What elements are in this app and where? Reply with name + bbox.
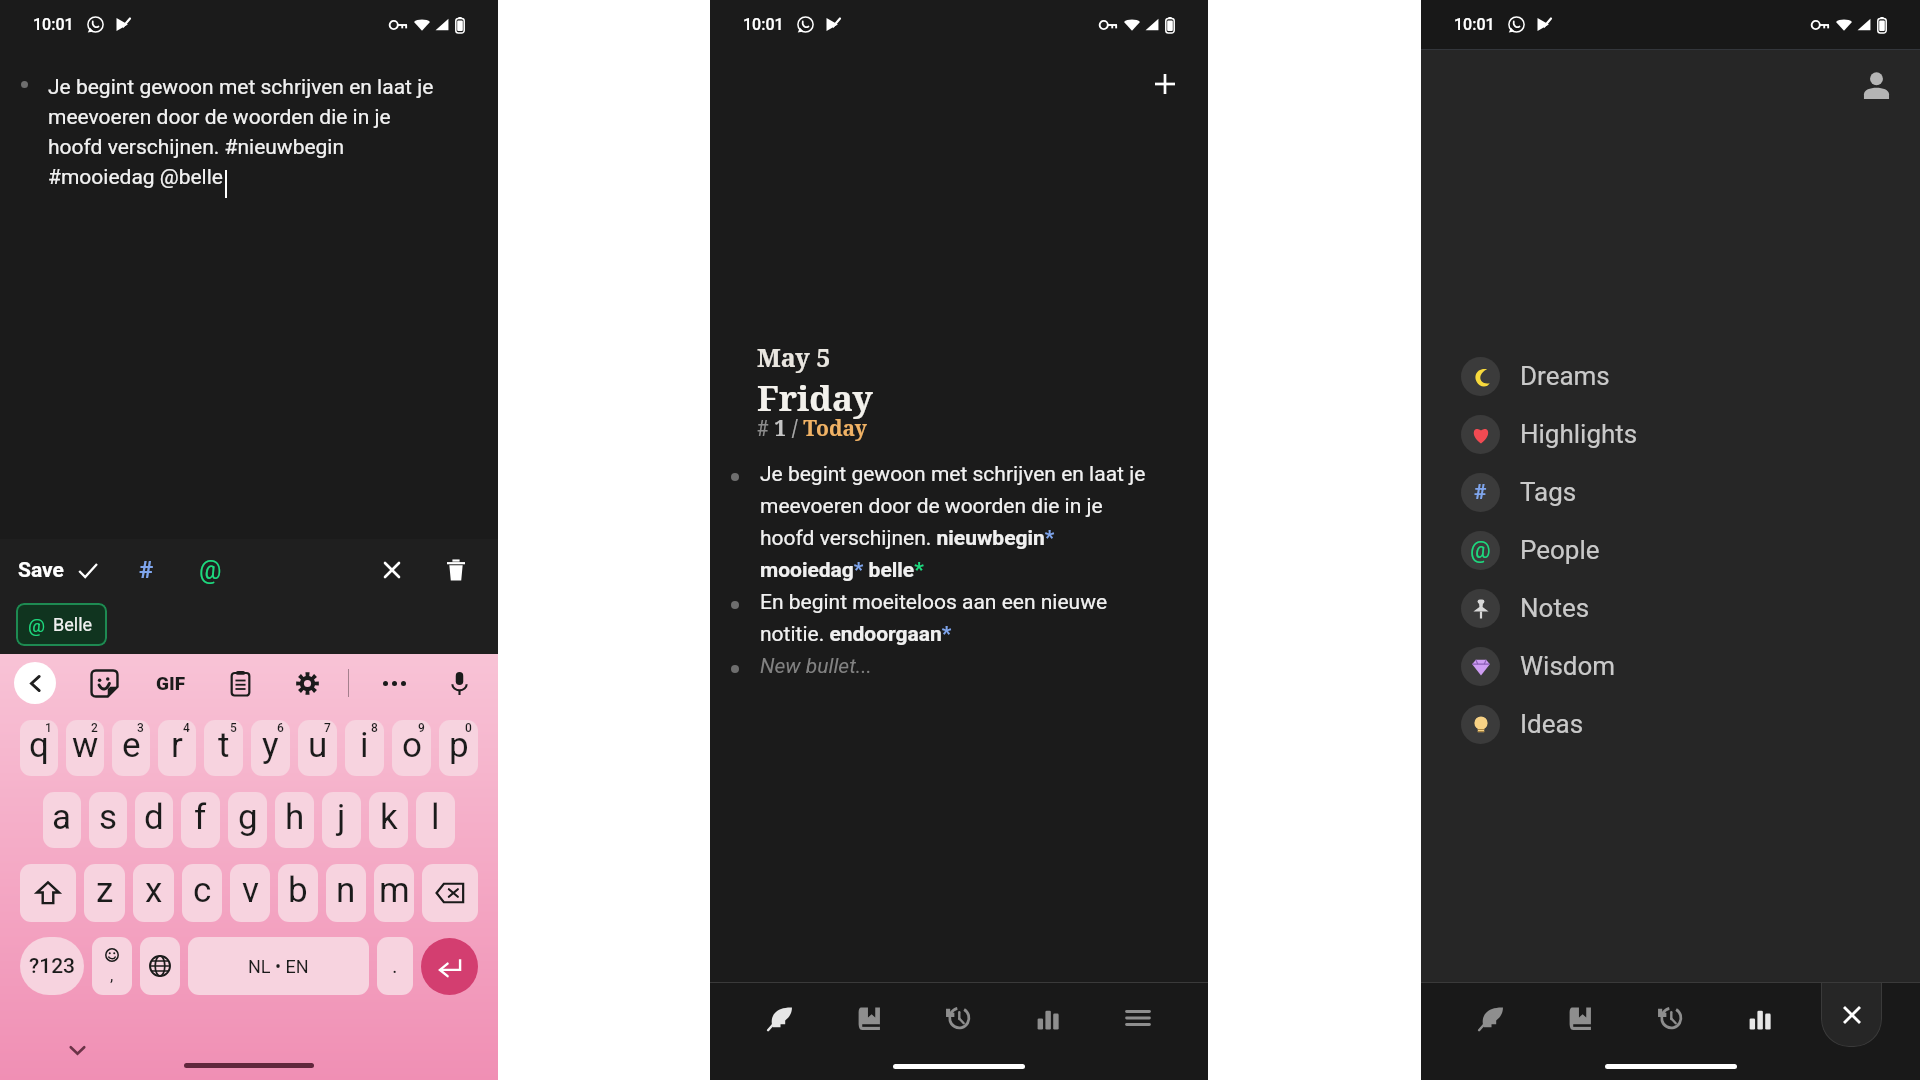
button[interactable]: # xyxy=(1421,463,1920,521)
button[interactable]: a xyxy=(43,792,81,848)
staticText: m xyxy=(379,870,410,911)
staticText: z xyxy=(96,870,114,911)
staticText: Dreams xyxy=(1520,361,1610,391)
button[interactable]: 9 xyxy=(392,720,431,776)
button[interactable]: Ideas xyxy=(1421,695,1920,753)
button[interactable]: Voice input xyxy=(442,666,476,700)
button[interactable]: b xyxy=(278,864,318,922)
button[interactable]: Period xyxy=(377,937,413,995)
button[interactable]: Journal xyxy=(1535,983,1625,1052)
staticText: c xyxy=(193,870,212,911)
staticText: x xyxy=(145,870,163,911)
staticText: Friday xyxy=(757,374,873,422)
button[interactable]: Save xyxy=(18,550,98,591)
button[interactable]: Journal xyxy=(824,983,913,1052)
button[interactable]: Stats xyxy=(1003,983,1093,1052)
button[interactable]: k xyxy=(369,792,408,848)
button[interactable]: Stickers xyxy=(87,666,121,700)
staticText: . xyxy=(392,954,398,979)
button[interactable]: Menu xyxy=(1093,983,1183,1052)
button[interactable]: 3 xyxy=(112,720,150,776)
button[interactable]: Close menu xyxy=(1821,982,1882,1047)
staticText: @ xyxy=(199,556,222,585)
button[interactable]: 2 xyxy=(66,720,104,776)
button[interactable]: h xyxy=(275,792,314,848)
button[interactable]: Emoji xyxy=(92,937,132,995)
button[interactable]: Shift xyxy=(20,864,76,922)
staticText: 8 xyxy=(371,721,378,735)
button[interactable]: m xyxy=(374,864,414,922)
button[interactable]: z xyxy=(84,864,125,922)
button[interactable]: Write xyxy=(735,983,824,1052)
button[interactable]: @ xyxy=(16,603,107,646)
button[interactable]: 7 xyxy=(298,720,337,776)
staticText: n xyxy=(336,870,356,911)
staticText: 0 xyxy=(465,721,472,735)
staticText: @ xyxy=(1470,537,1491,564)
button[interactable]: 1 xyxy=(20,720,58,776)
button[interactable]: GIF xyxy=(152,664,190,702)
button[interactable]: History xyxy=(913,983,1003,1052)
staticText: v xyxy=(242,870,259,911)
button[interactable]: Highlights xyxy=(1421,405,1920,463)
staticText: Save xyxy=(18,558,64,583)
staticText: o xyxy=(402,725,422,766)
button[interactable]: History xyxy=(1625,983,1715,1052)
staticText: d xyxy=(144,797,164,838)
staticText: 6 xyxy=(277,721,284,735)
button[interactable]: Settings xyxy=(290,666,324,700)
staticText: s xyxy=(99,797,118,838)
button[interactable]: Menu xyxy=(1805,983,1895,1052)
button[interactable]: d xyxy=(135,792,173,848)
button[interactable]: s xyxy=(89,792,127,848)
button[interactable]: Clipboard xyxy=(223,666,257,700)
staticText: Belle xyxy=(53,614,93,635)
button[interactable]: 8 xyxy=(345,720,384,776)
button[interactable]: Dreams xyxy=(1421,347,1920,405)
staticText: ?123 xyxy=(29,954,76,979)
staticText: p xyxy=(449,725,469,766)
staticText: # xyxy=(139,556,154,584)
button[interactable]: 0 xyxy=(439,720,478,776)
button[interactable]: Delete xyxy=(438,552,474,588)
staticText: # xyxy=(1474,480,1487,505)
button[interactable]: j xyxy=(322,792,361,848)
button[interactable]: Close xyxy=(374,552,410,588)
staticText: b xyxy=(288,870,308,911)
button[interactable]: Hide keyboard xyxy=(64,1037,90,1063)
staticText: , xyxy=(110,965,114,985)
button[interactable]: @ xyxy=(1421,521,1920,579)
button[interactable]: Wisdom xyxy=(1421,637,1920,695)
staticText: e xyxy=(122,725,141,766)
button[interactable]: More options xyxy=(377,666,411,700)
button[interactable]: Change language xyxy=(140,937,180,995)
button[interactable]: n xyxy=(326,864,366,922)
button[interactable]: Notes xyxy=(1421,579,1920,637)
button[interactable]: f xyxy=(181,792,220,848)
button[interactable]: Add entry xyxy=(1143,62,1187,106)
staticText: Wisdom xyxy=(1520,651,1616,681)
button[interactable]: Stats xyxy=(1715,983,1805,1052)
button[interactable]: v xyxy=(230,864,270,922)
staticText: w xyxy=(72,725,99,766)
button[interactable]: 5 xyxy=(204,720,243,776)
button[interactable]: 6 xyxy=(251,720,290,776)
button[interactable]: Mention xyxy=(192,552,228,588)
button[interactable]: Space xyxy=(188,937,369,995)
button[interactable]: c xyxy=(182,864,222,922)
staticText: u xyxy=(308,725,328,766)
button[interactable]: Tag xyxy=(128,552,164,588)
staticText: May 5 xyxy=(757,340,831,374)
button[interactable]: Write xyxy=(1446,983,1535,1052)
button[interactable]: Backspace xyxy=(422,864,478,922)
button[interactable]: 4 xyxy=(158,720,196,776)
button[interactable]: ?123 xyxy=(20,937,84,995)
button[interactable]: Enter xyxy=(421,938,478,995)
staticText: 5 xyxy=(230,721,237,735)
button[interactable]: g xyxy=(228,792,267,848)
button[interactable]: Back xyxy=(14,662,56,704)
button[interactable]: l xyxy=(416,792,455,848)
button[interactable]: Profile xyxy=(1855,64,1897,106)
button[interactable]: x xyxy=(133,864,174,922)
staticText: h xyxy=(285,797,305,838)
